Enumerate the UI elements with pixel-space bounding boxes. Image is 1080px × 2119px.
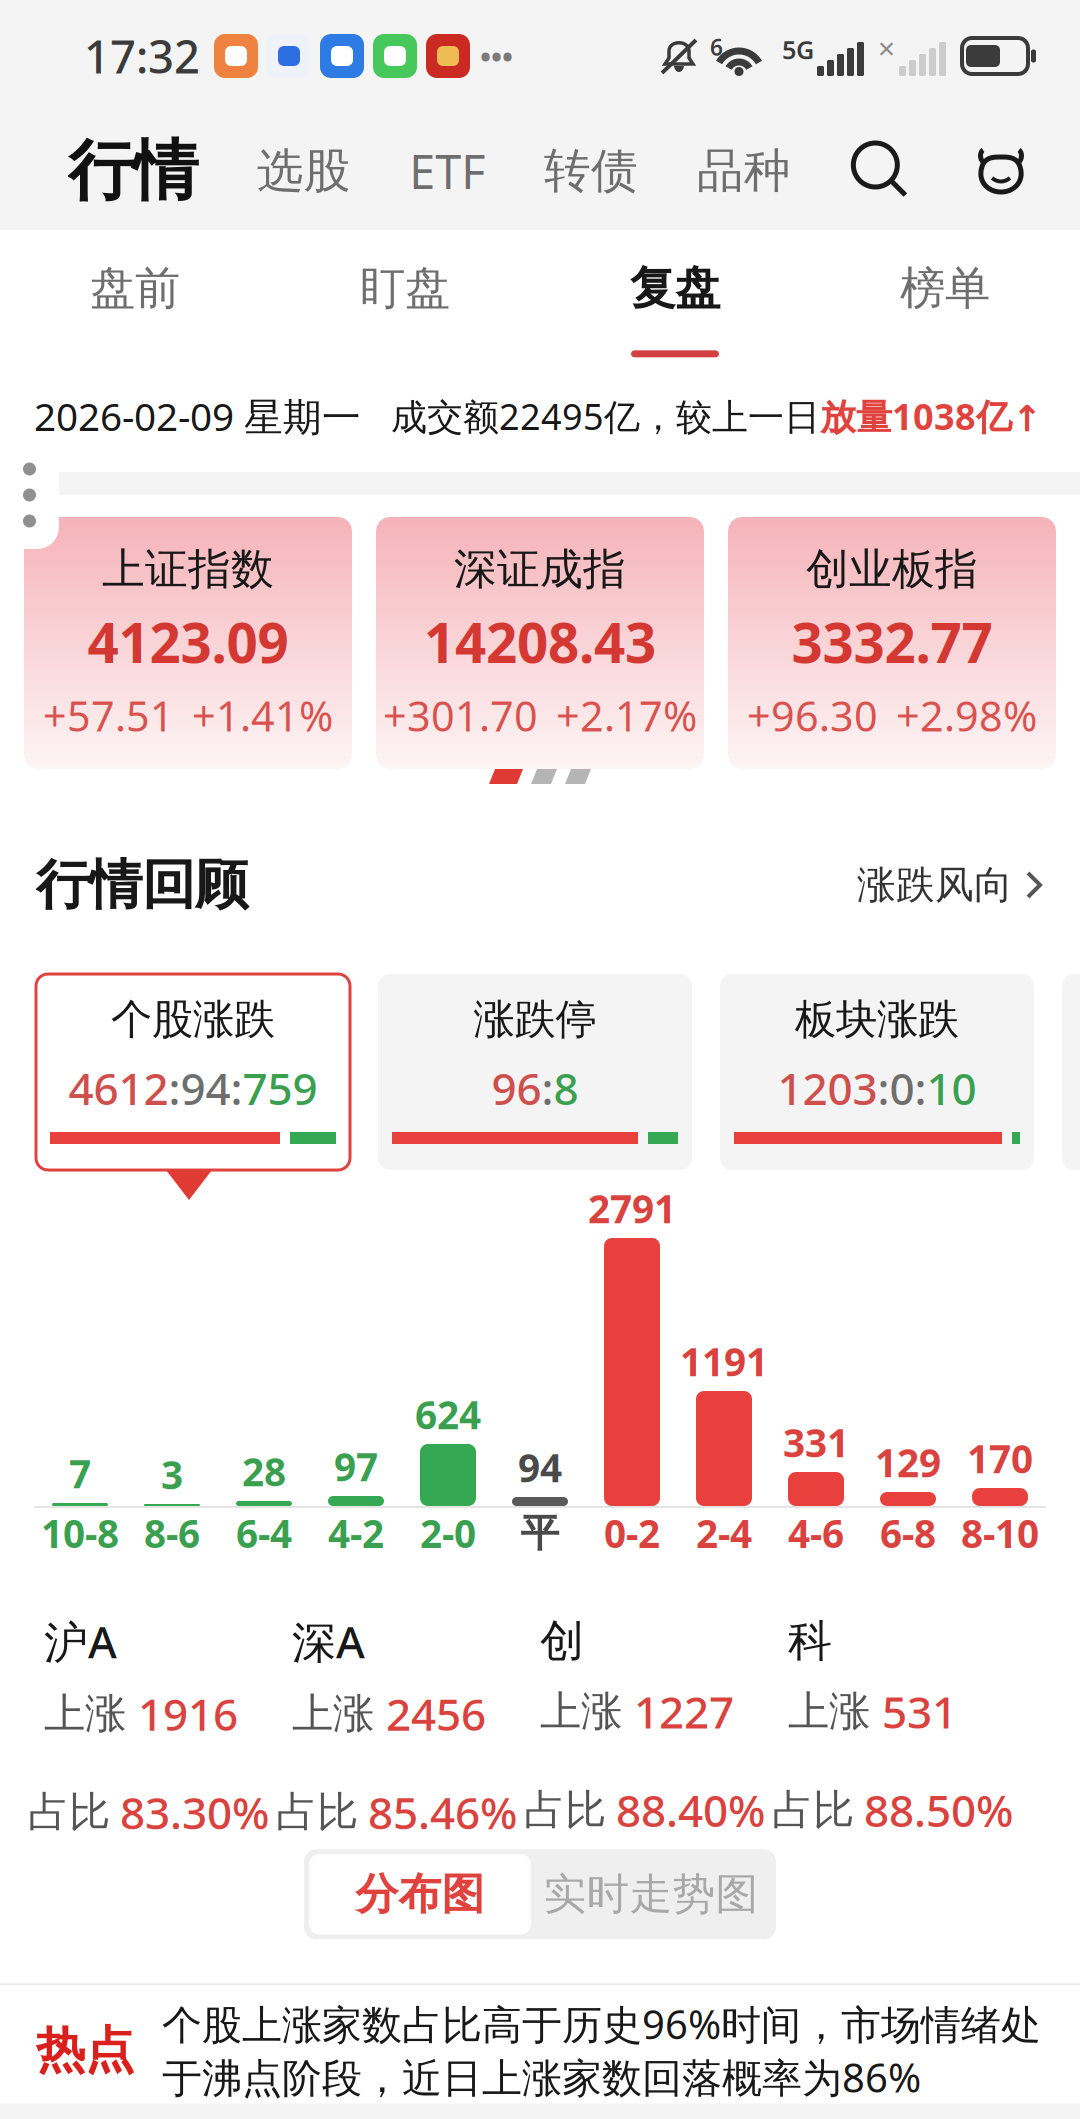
staticText: 上涨: [292, 1688, 374, 1739]
button[interactable]: 深证成指: [376, 517, 704, 769]
staticText: 上证指数: [102, 543, 274, 595]
staticText: +301.70: [383, 688, 538, 743]
staticText: 上涨: [788, 1686, 870, 1737]
staticText: 沪A: [44, 1612, 117, 1670]
button[interactable]: 榜单: [810, 230, 1080, 360]
staticText: 10: [926, 1059, 976, 1117]
button[interactable]: 盘前: [0, 230, 270, 360]
staticText: 6: [710, 32, 723, 62]
staticText: 8-10: [961, 1507, 1039, 1559]
staticText: 转债: [544, 142, 638, 200]
staticText: 624: [415, 1389, 481, 1440]
staticText: :: [541, 1059, 553, 1117]
staticText: 上涨: [44, 1688, 126, 1739]
staticText: 创业板指: [806, 543, 978, 595]
staticText: 7: [69, 1448, 91, 1499]
staticText: 0-2: [604, 1507, 660, 1559]
staticText: 1916: [138, 1684, 238, 1743]
button[interactable]: 实时走势图: [531, 1854, 771, 1934]
staticText: 实时走势图: [543, 1868, 758, 1920]
button[interactable]: 个股涨跌: [36, 974, 350, 1170]
staticText: 板块涨跌: [795, 994, 959, 1045]
staticText: :: [914, 1059, 926, 1117]
staticText: 2791: [588, 1183, 676, 1234]
staticText: 83.30%: [120, 1783, 269, 1841]
staticText: 170: [967, 1433, 1033, 1484]
staticText: 平: [520, 1509, 559, 1557]
staticText: 创: [540, 1614, 584, 1668]
staticText: 8-6: [144, 1507, 200, 1559]
button[interactable]: 板块涨跌: [720, 974, 1034, 1170]
staticText: 科: [788, 1614, 832, 1668]
staticText: 品种: [697, 142, 791, 200]
staticText: 4-6: [788, 1507, 844, 1559]
staticText: 涨跌风向: [857, 861, 1013, 909]
staticText: 3332.77: [791, 605, 992, 678]
staticText: 1227: [634, 1682, 734, 1741]
staticText: 94: [180, 1059, 230, 1117]
staticText: 行情: [68, 131, 198, 211]
staticText: 4123.09: [87, 605, 288, 678]
staticText: 4612: [68, 1059, 168, 1117]
staticText: 选股: [257, 142, 351, 200]
staticText: 5G: [782, 33, 814, 66]
staticText: 28: [242, 1446, 286, 1497]
button[interactable]: 智能助手: [970, 142, 1032, 200]
staticText: 个股上涨家数占比高于历史96%时间，市场情绪处于沸点阶段，近日上涨家数回落概率为…: [162, 1997, 1041, 2103]
button[interactable]: 复盘: [540, 230, 810, 360]
button[interactable]: 分布图: [309, 1854, 531, 1934]
button[interactable]: 创业板指: [728, 517, 1056, 769]
button[interactable]: 盯盘: [270, 230, 540, 360]
staticText: 88.40%: [616, 1781, 765, 1839]
staticText: +2.98%: [896, 688, 1037, 743]
staticText: 10-8: [41, 1507, 119, 1559]
staticText: 涨跌停: [473, 994, 596, 1045]
staticText: ETF: [409, 140, 485, 202]
staticText: 1203: [777, 1059, 877, 1117]
staticText: 成交额22495亿，较上一日: [391, 392, 820, 440]
staticText: 6-8: [880, 1507, 936, 1559]
staticText: 深A: [292, 1612, 365, 1670]
button[interactable]: 上证指数: [24, 517, 352, 769]
staticText: 占比: [28, 1787, 110, 1837]
staticText: 分布图: [355, 1868, 484, 1920]
staticText: 2456: [386, 1684, 486, 1743]
staticText: +96.30: [747, 688, 878, 743]
staticText: •••: [480, 36, 513, 75]
staticText: 331: [783, 1417, 849, 1468]
staticText: 531: [882, 1682, 957, 1741]
staticText: 1191: [680, 1336, 768, 1387]
button[interactable]: ETF: [409, 140, 485, 202]
button[interactable]: 更多: [0, 441, 59, 549]
staticText: 行情回顾: [36, 852, 248, 918]
staticText: 个股涨跌: [111, 994, 275, 1045]
staticText: 盘前: [90, 261, 180, 316]
staticText: 上涨: [540, 1686, 622, 1737]
staticText: :: [168, 1059, 180, 1117]
staticText: 85.46%: [368, 1783, 517, 1841]
staticText: :: [877, 1059, 889, 1117]
button[interactable]: 选股: [257, 142, 351, 200]
button[interactable]: 涨跌风向: [857, 861, 1044, 909]
button[interactable]: 搜索: [849, 140, 911, 202]
staticText: +57.51: [43, 688, 174, 743]
staticText: 复盘: [630, 261, 720, 316]
staticText: 94: [518, 1442, 562, 1493]
staticText: 2-0: [420, 1507, 476, 1559]
staticText: +2.17%: [556, 688, 697, 743]
staticText: 盯盘: [360, 261, 450, 316]
staticText: 3: [161, 1449, 183, 1500]
staticText: 深证成指: [454, 543, 626, 595]
staticText: ✕: [877, 37, 896, 62]
button[interactable]: 转债: [544, 142, 638, 200]
staticText: 占比: [276, 1787, 358, 1837]
staticText: 8: [553, 1059, 578, 1117]
button[interactable]: 涨跌停: [378, 974, 692, 1170]
staticText: 759: [242, 1059, 317, 1117]
staticText: 2026-02-09 星期一: [34, 390, 361, 442]
staticText: 放量1038亿↑: [820, 392, 1042, 440]
staticText: 热点: [36, 2020, 134, 2081]
button[interactable]: 行情: [68, 131, 198, 211]
staticText: +1.41%: [192, 688, 333, 743]
button[interactable]: 品种: [697, 142, 791, 200]
